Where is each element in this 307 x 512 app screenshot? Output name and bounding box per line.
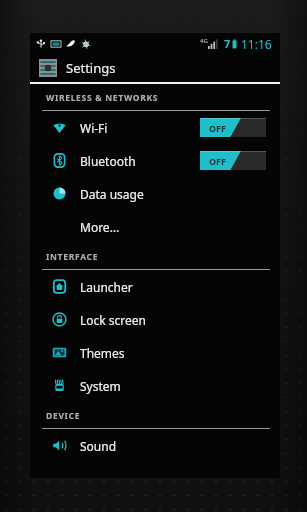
staticText: OFF <box>209 122 227 134</box>
button[interactable]: Settings <box>30 54 280 82</box>
staticText: System <box>80 378 266 394</box>
button[interactable]: Wi-Fi <box>30 111 280 144</box>
button[interactable]: Toggle off <box>200 118 266 137</box>
button[interactable]: Themes <box>30 336 280 369</box>
staticText: Themes <box>80 345 266 361</box>
button[interactable]: Toggle off <box>200 151 266 170</box>
button[interactable]: Lock screen <box>30 303 280 336</box>
staticText: WIRELESS & NETWORKS <box>46 92 159 104</box>
button[interactable]: System <box>30 369 280 402</box>
staticText: DEVICE <box>46 410 81 422</box>
staticText: Sound <box>80 438 266 454</box>
button[interactable]: Data usage <box>30 177 280 210</box>
staticText: INTERFACE <box>46 251 99 263</box>
staticText: More… <box>80 219 266 235</box>
staticText: 4G <box>200 37 208 45</box>
button[interactable]: Sound <box>30 429 280 462</box>
staticText: Bluetooth <box>80 153 200 169</box>
staticText: Launcher <box>80 279 266 295</box>
staticText: OFF <box>209 155 227 167</box>
staticText: 7 <box>224 36 231 51</box>
staticText: 11:16 <box>241 36 272 52</box>
button[interactable]: Launcher <box>30 270 280 303</box>
staticText: Data usage <box>80 186 266 202</box>
button[interactable]: Bluetooth <box>30 144 280 177</box>
staticText: Lock screen <box>80 312 266 328</box>
staticText: Wi-Fi <box>80 120 200 136</box>
staticText: Settings <box>66 59 116 77</box>
button[interactable]: More… <box>30 210 280 243</box>
